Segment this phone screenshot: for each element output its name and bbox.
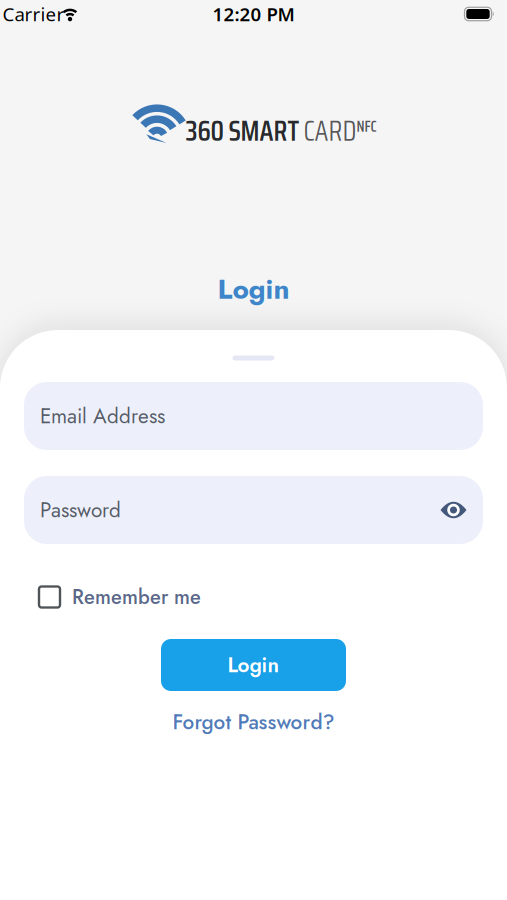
staticText: Remember me — [72, 582, 201, 611]
staticText: Login — [227, 650, 279, 680]
button[interactable]: Forgot Password? — [172, 707, 334, 737]
staticText: CARD — [303, 109, 356, 153]
staticText: 360 SMART — [185, 109, 303, 153]
staticText: Password — [40, 495, 121, 525]
staticText: 12:20 PM — [212, 2, 294, 26]
staticText: Email Address — [40, 401, 165, 431]
staticText: Carrier — [2, 2, 64, 26]
button[interactable]: Remember me — [39, 582, 201, 611]
staticText: Forgot Password? — [172, 707, 334, 737]
button[interactable]: Show password — [434, 495, 473, 525]
staticText: Login — [217, 269, 289, 309]
staticText: NFC — [356, 114, 376, 138]
button[interactable]: Login — [161, 639, 346, 691]
